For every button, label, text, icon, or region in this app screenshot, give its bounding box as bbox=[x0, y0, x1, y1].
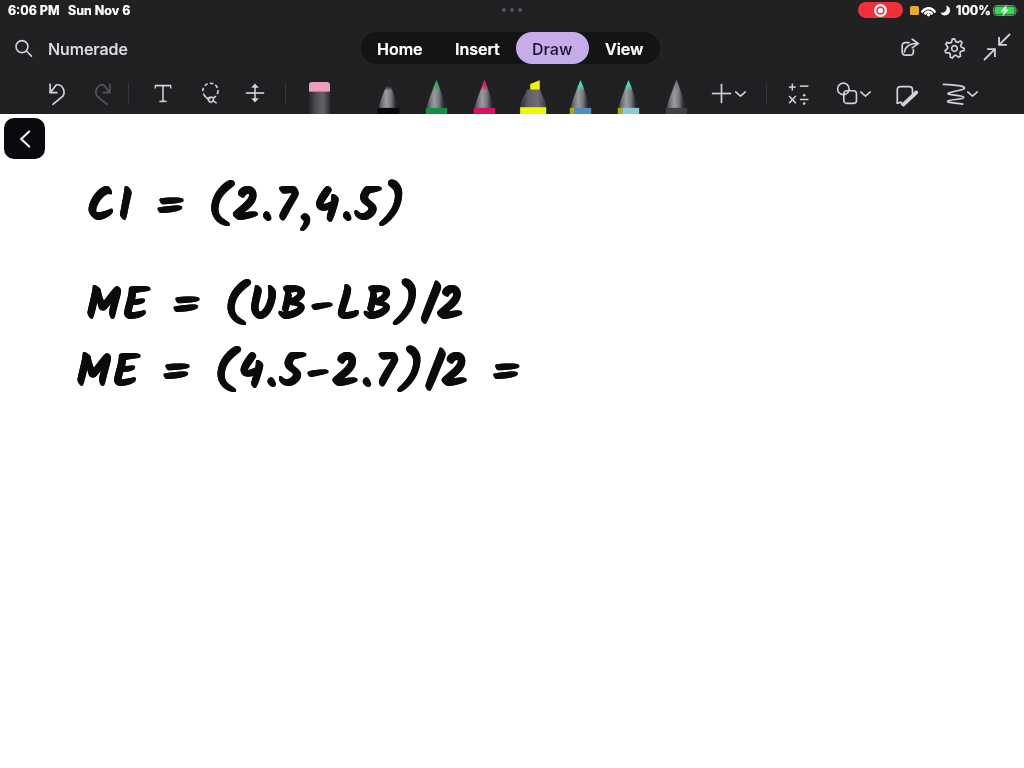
button[interactable]: Shapes bbox=[836, 82, 859, 105]
other: Search bbox=[14, 39, 33, 58]
staticText: ME = (UB-LB)/2 bbox=[86, 271, 466, 343]
button[interactable]: Ink styles bbox=[943, 82, 966, 105]
staticText: ME = (4.5-2.7)/2 = bbox=[76, 338, 524, 410]
button[interactable]: View bbox=[589, 32, 660, 64]
staticText: ME = (UB-LB)/2 bbox=[87, 272, 467, 344]
button[interactable]: Math bbox=[787, 82, 810, 105]
button[interactable]: Pen bbox=[617, 80, 640, 114]
button[interactable]: Share bbox=[895, 35, 922, 62]
staticText: CI = (2.7,4.5) bbox=[88, 173, 409, 245]
button[interactable]: Pen bbox=[473, 80, 496, 114]
button[interactable]: Text bbox=[153, 83, 173, 103]
staticText: 6:06 PM bbox=[8, 3, 60, 18]
staticText: ME = (4.5-2.7)/2 = bbox=[77, 338, 525, 410]
staticText: ME = (4.5-2.7)/2 = bbox=[76, 338, 524, 410]
staticText: Numerade bbox=[48, 39, 128, 58]
button[interactable]: Show more bbox=[734, 87, 747, 100]
staticText: ME = (UB-LB)/2 bbox=[86, 271, 466, 343]
button[interactable]: Add tool bbox=[711, 83, 732, 104]
button[interactable]: Pen bbox=[425, 80, 448, 114]
button[interactable]: Home bbox=[361, 32, 439, 64]
staticText: Insert bbox=[455, 39, 500, 58]
staticText: ME = (4.5-2.7)/2 = bbox=[76, 338, 524, 410]
staticText: ME = (4.5-2.7)/2 = bbox=[76, 339, 524, 411]
button[interactable]: Pen bbox=[665, 80, 688, 114]
button[interactable]: Pen bbox=[377, 80, 400, 114]
button[interactable]: Recording bbox=[858, 2, 903, 18]
button[interactable]: Insert bbox=[439, 32, 516, 64]
staticText: CI = (2.7,4.5) bbox=[87, 172, 408, 244]
staticText: ME = (UB-LB)/2 bbox=[86, 272, 466, 344]
staticText: Draw bbox=[532, 39, 573, 58]
staticText: CI = (2.7,4.5) bbox=[87, 173, 408, 245]
staticText: 100% bbox=[956, 3, 991, 18]
button[interactable]: Settings bbox=[941, 35, 968, 62]
staticText: Home bbox=[377, 39, 423, 58]
button[interactable]: Undo bbox=[48, 82, 67, 105]
button[interactable]: Show more bbox=[966, 87, 979, 100]
button[interactable]: Eraser bbox=[309, 82, 330, 114]
button[interactable]: Collapse bbox=[983, 33, 1011, 61]
staticText: ME = (4.5-2.7)/2 = bbox=[77, 339, 525, 411]
staticText: View bbox=[605, 39, 644, 58]
button[interactable]: Back bbox=[4, 118, 45, 159]
staticText: Sun Nov 6 bbox=[68, 3, 131, 18]
button[interactable]: Search bbox=[14, 39, 128, 58]
button[interactable]: Show more bbox=[859, 87, 872, 100]
staticText: ME = (UB-LB)/2 bbox=[87, 271, 467, 343]
staticText: CI = (2.7,4.5) bbox=[87, 172, 408, 244]
button[interactable]: Lasso select bbox=[199, 82, 221, 104]
button[interactable]: Pen bbox=[569, 80, 592, 114]
staticText: CI = (2.7,4.5) bbox=[87, 172, 408, 244]
button[interactable]: Draw bbox=[516, 32, 589, 64]
button[interactable]: Sticky note bbox=[895, 82, 918, 105]
staticText: ME = (4.5-2.7)/2 = bbox=[77, 339, 525, 411]
button[interactable]: Highlighter bbox=[519, 80, 547, 114]
staticText: ME = (UB-LB)/2 bbox=[86, 271, 466, 343]
staticText: CI = (2.7,4.5) bbox=[88, 172, 409, 244]
button[interactable]: Redo bbox=[93, 82, 112, 105]
staticText: ME = (UB-LB)/2 bbox=[87, 272, 467, 344]
staticText: CI = (2.7,4.5) bbox=[88, 173, 409, 245]
button[interactable]: Adjust spacing bbox=[245, 83, 265, 103]
